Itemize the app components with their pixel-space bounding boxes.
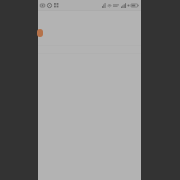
button[interactable]: Accent indicator [37, 29, 43, 37]
